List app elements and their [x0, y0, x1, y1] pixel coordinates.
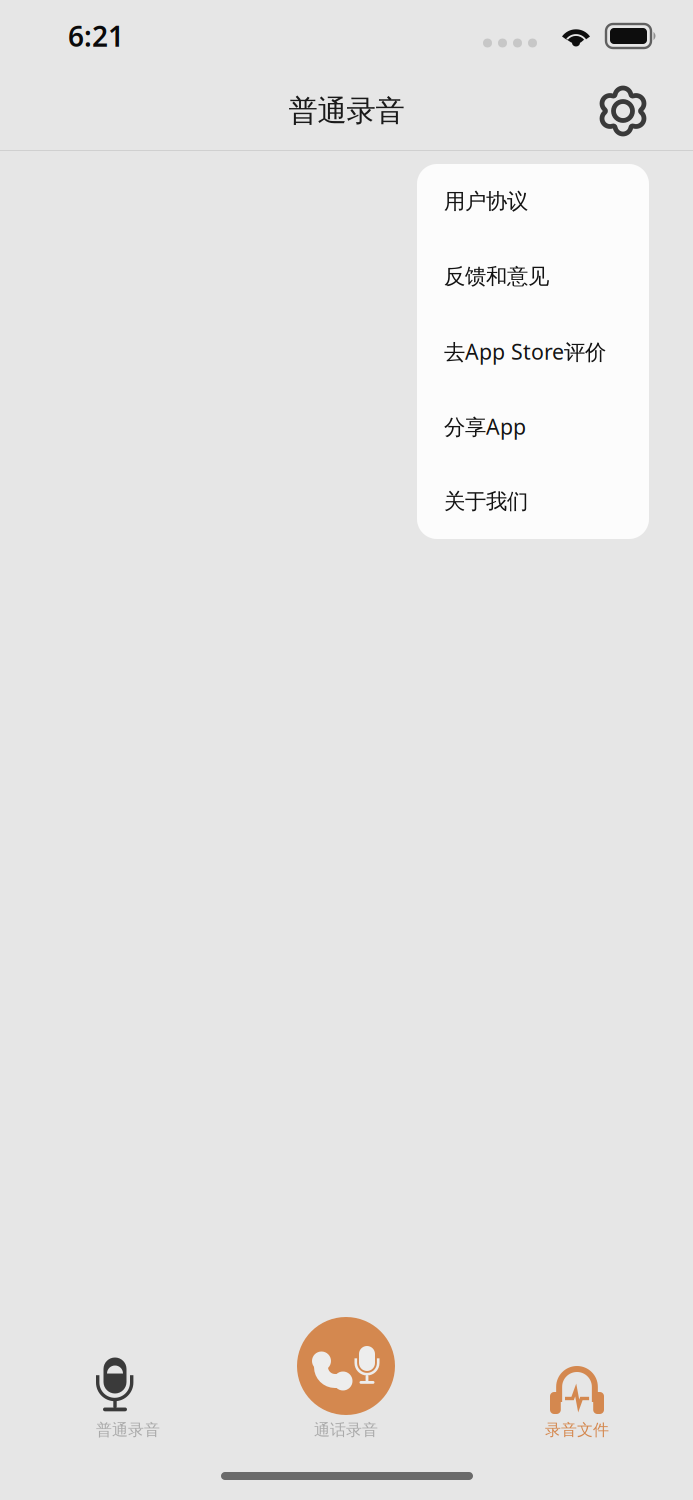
staticText: 普通录音	[96, 1420, 160, 1440]
button[interactable]: 反馈和意见	[417, 239, 649, 314]
staticText: 用户协议	[444, 188, 528, 215]
staticText: 6:21	[68, 17, 124, 55]
button[interactable]: 关于我们	[417, 464, 649, 539]
staticText: 关于我们	[444, 488, 528, 515]
button[interactable]: 去App Store评价	[417, 314, 649, 389]
staticText: 通话录音	[314, 1420, 378, 1440]
button[interactable]: 普通录音	[14, 1302, 214, 1452]
staticText: 分享App	[444, 412, 526, 441]
staticText: 去App Store评价	[444, 337, 606, 366]
button[interactable]: 分享App	[417, 389, 649, 464]
staticText: 录音文件	[545, 1420, 609, 1440]
staticText: 反馈和意见	[444, 263, 549, 290]
staticText: 普通录音	[288, 93, 404, 129]
button[interactable]: 通话录音	[246, 1302, 446, 1452]
button[interactable]: Settings	[581, 73, 665, 149]
button[interactable]: 录音文件	[477, 1302, 677, 1452]
button[interactable]: 用户协议	[417, 164, 649, 239]
